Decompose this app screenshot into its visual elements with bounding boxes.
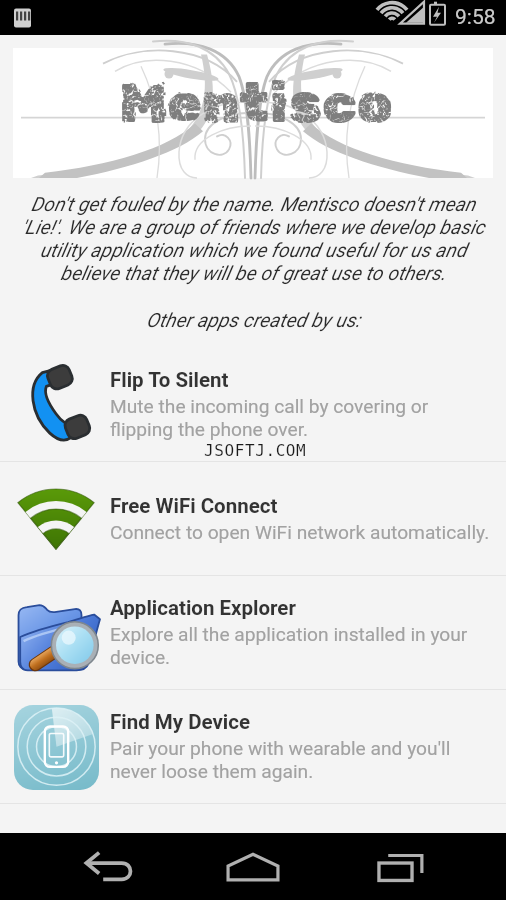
staticText: JSOFTJ.COM xyxy=(204,441,307,460)
button[interactable]: Back xyxy=(44,833,154,900)
staticText: Application Explorer xyxy=(110,596,296,620)
staticText: 9:58 xyxy=(455,5,496,30)
staticText: Flip To Silent xyxy=(110,368,229,392)
staticText: Other apps created by us: xyxy=(0,309,506,332)
staticText: Explore all the application installed in… xyxy=(110,623,492,669)
staticText: Pair your phone with wearable and you'll… xyxy=(110,737,492,783)
button[interactable]: Flip To Silent xyxy=(0,348,506,461)
button[interactable]: Recent apps xyxy=(352,833,462,900)
button[interactable]: Home xyxy=(198,833,308,900)
staticText: Free WiFi Connect xyxy=(110,494,278,518)
staticText: Find My Device xyxy=(110,710,251,734)
staticText: Mute the incoming call by covering or fl… xyxy=(110,395,492,441)
staticText: Connect to open WiFi network automatical… xyxy=(110,521,490,544)
button[interactable]: Application Explorer xyxy=(0,576,506,689)
button[interactable]: Find My Device xyxy=(0,690,506,803)
staticText: Mentisco xyxy=(119,70,393,136)
button[interactable]: Free WiFi Connect xyxy=(0,462,506,575)
staticText: Don't get fouled by the name. Mentisco d… xyxy=(14,193,492,285)
